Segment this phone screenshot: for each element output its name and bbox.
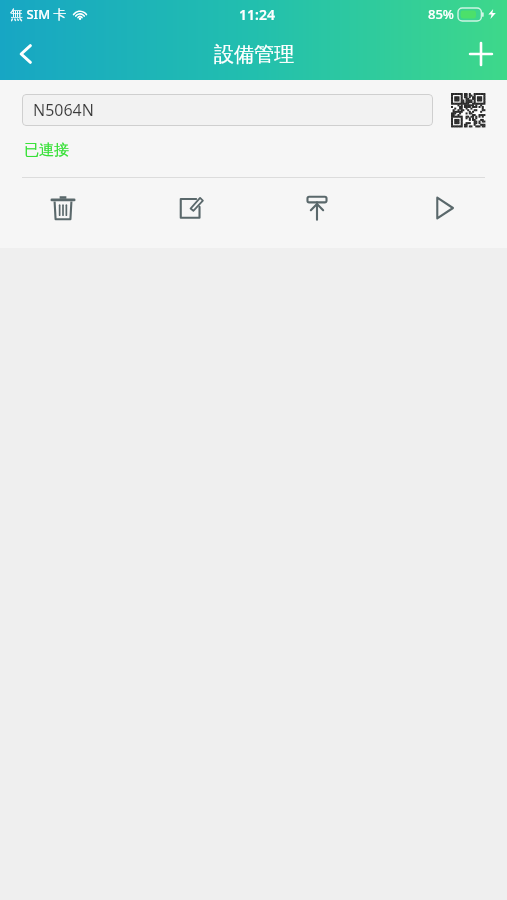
button[interactable]: N5064N (22, 94, 433, 126)
button[interactable]: Edit (126, 178, 253, 238)
button[interactable]: Delete (0, 178, 126, 238)
button[interactable]: Add (455, 28, 507, 80)
button[interactable]: Upload (253, 178, 380, 238)
staticText: 85% (428, 5, 454, 23)
button[interactable]: QR code (451, 93, 485, 127)
staticText: N5064N (33, 99, 94, 121)
button[interactable]: Back (0, 28, 52, 80)
staticText: 設備管理 (214, 42, 294, 67)
button[interactable]: Play (380, 178, 507, 238)
staticText: 已連接 (24, 141, 69, 160)
staticText: 無 SIM 卡 (10, 5, 67, 23)
staticText: 11:24 (239, 5, 275, 24)
